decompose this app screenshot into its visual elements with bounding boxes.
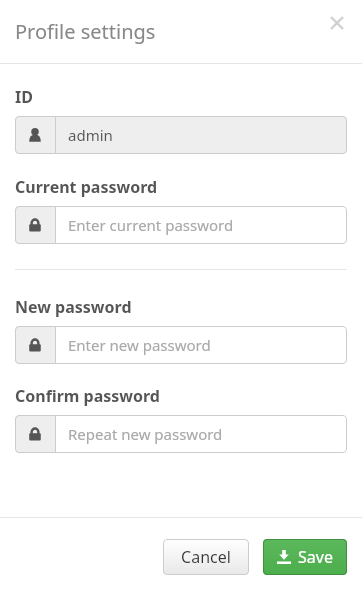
staticText: Cancel: [181, 546, 231, 568]
staticText: Confirm password: [15, 385, 160, 407]
button[interactable]: Password: [15, 326, 347, 364]
button[interactable]: Password: [15, 206, 347, 244]
staticText: admin: [68, 125, 113, 145]
staticText: ID: [15, 86, 33, 108]
button[interactable]: Password: [15, 415, 347, 453]
other: Password: [15, 326, 55, 364]
button[interactable]: Save: [263, 539, 347, 575]
staticText: Enter new password: [68, 335, 211, 355]
staticText: Profile settings: [15, 18, 156, 45]
other: User: [15, 116, 55, 154]
button[interactable]: User: [15, 116, 347, 154]
other: Password: [15, 415, 55, 453]
button[interactable]: Cancel: [163, 539, 249, 575]
staticText: Current password: [15, 176, 158, 198]
staticText: New password: [15, 296, 132, 318]
other: Password: [15, 206, 55, 244]
staticText: Enter current password: [68, 215, 234, 235]
button[interactable]: Close: [322, 8, 352, 38]
staticText: Repeat new password: [68, 424, 223, 444]
staticText: Save: [298, 546, 333, 568]
